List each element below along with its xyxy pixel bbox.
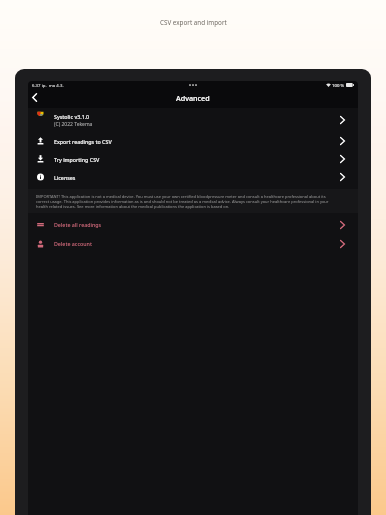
button[interactable]: Delete account — [28, 234, 358, 253]
button[interactable]: Delete all readings — [28, 215, 358, 234]
staticText: IMPORTANT! This application is not a med… — [36, 194, 338, 209]
staticText: Try importing CSV — [54, 156, 100, 163]
button[interactable]: Systolic v3.1.0 — [28, 108, 358, 132]
staticText: CSV export and import — [160, 18, 227, 27]
button[interactable]: Licenses — [28, 168, 358, 186]
button[interactable]: Try importing CSV — [28, 150, 358, 168]
button[interactable]: Export readings to CSV — [28, 132, 358, 150]
staticText: Advanced — [176, 93, 210, 103]
staticText: 6.37 ip. ma 4.3. — [32, 82, 64, 88]
staticText: Export readings to CSV — [54, 138, 112, 145]
staticText: Licenses — [54, 174, 76, 181]
staticText: Delete account — [54, 240, 92, 247]
staticText: 100 % — [332, 82, 345, 88]
staticText: Systolic v3.1.0 — [54, 113, 90, 120]
staticText: Delete all readings — [54, 221, 102, 228]
button[interactable]: Back — [28, 88, 42, 107]
staticText: (C) 2022 Tekema — [54, 121, 93, 128]
